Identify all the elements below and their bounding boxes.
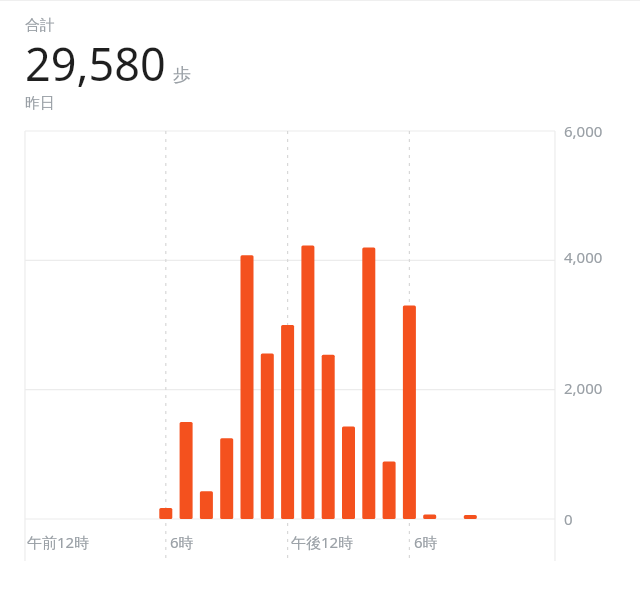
staticText: 6,000 [564,121,603,141]
staticText: 6時 [414,532,438,552]
staticText: 午後12時 [291,532,354,552]
staticText: 昨日 [25,94,55,113]
staticText: 歩 [173,64,191,87]
button[interactable]: 合計 [0,0,640,119]
staticText: 4,000 [564,247,603,267]
staticText: 2,000 [564,378,603,398]
button[interactable]: Hourly steps bar chart [0,119,640,589]
staticText: 合計 [25,16,55,35]
staticText: 29,580 [25,33,166,94]
staticText: 午前12時 [27,532,90,552]
staticText: 6時 [170,532,194,552]
staticText: 0 [564,509,573,529]
